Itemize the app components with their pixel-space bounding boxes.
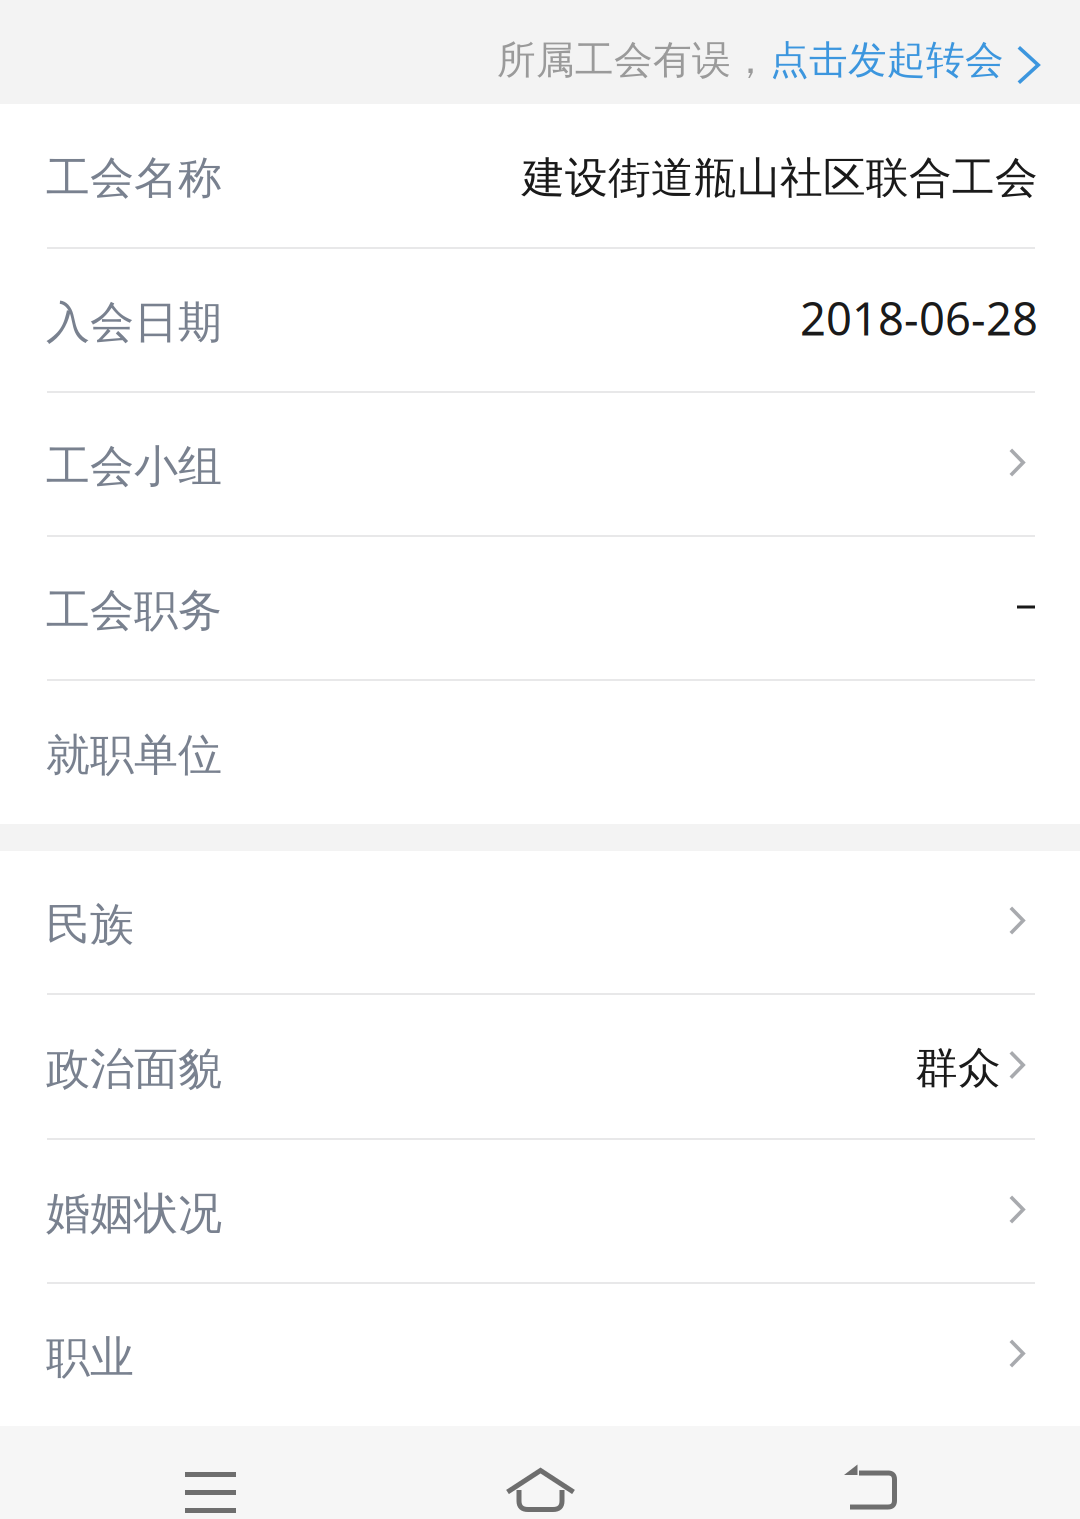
button[interactable]: 政治面貌 <box>0 995 1080 1138</box>
staticText: 工会小组 <box>46 439 222 493</box>
button[interactable]: 民族 <box>0 851 1080 993</box>
button[interactable]: 工会职务 <box>0 537 1080 679</box>
staticText: 点击发起转会 <box>770 36 1004 84</box>
button[interactable]: 就职单位 <box>0 681 1080 824</box>
button[interactable]: 工会名称 <box>0 104 1080 247</box>
staticText: 民族 <box>46 897 134 951</box>
button[interactable]: 工会小组 <box>0 393 1080 535</box>
button[interactable]: Back <box>660 1426 1080 1519</box>
button[interactable]: Home <box>421 1426 660 1519</box>
button[interactable]: 职业 <box>0 1284 1080 1426</box>
staticText: 群众 <box>915 1042 1001 1094</box>
staticText: 工会职务 <box>46 583 222 637</box>
staticText: 婚姻状况 <box>46 1186 222 1240</box>
button[interactable]: Recents <box>0 1426 421 1519</box>
staticText: 入会日期 <box>46 295 222 349</box>
staticText: 就职单位 <box>46 728 222 782</box>
staticText: 工会名称 <box>46 151 222 205</box>
staticText: 政治面貌 <box>46 1042 222 1096</box>
staticText: 所属工会有误， <box>497 36 770 84</box>
staticText: 2018-06-28 <box>800 288 1038 348</box>
staticText: 建设街道瓶山社区联合工会 <box>522 152 1038 204</box>
button[interactable]: 婚姻状况 <box>0 1140 1080 1282</box>
button[interactable]: 所属工会有误， <box>0 0 1080 104</box>
staticText: 职业 <box>46 1330 134 1384</box>
button[interactable]: 入会日期 <box>0 249 1080 391</box>
